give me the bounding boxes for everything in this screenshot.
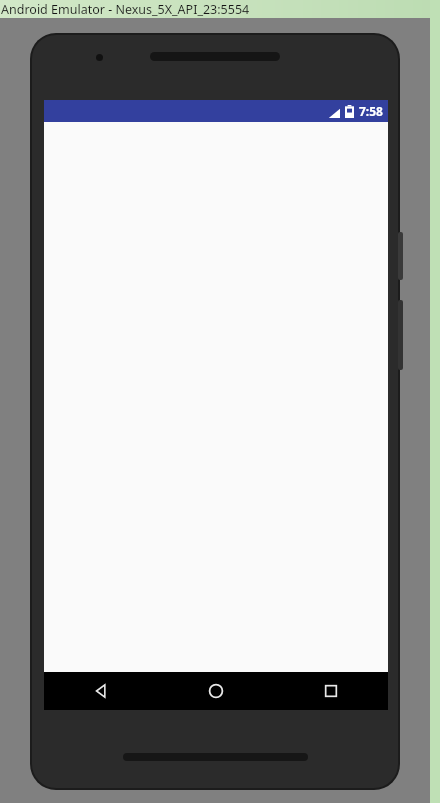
button[interactable]: Recent apps bbox=[273, 672, 388, 710]
staticText: Android Emulator - Nexus_5X_API_23:5554 bbox=[1, 1, 250, 18]
button[interactable]: Back bbox=[44, 672, 158, 710]
staticText: 7:58 bbox=[359, 103, 383, 119]
button[interactable]: Home bbox=[158, 672, 273, 710]
